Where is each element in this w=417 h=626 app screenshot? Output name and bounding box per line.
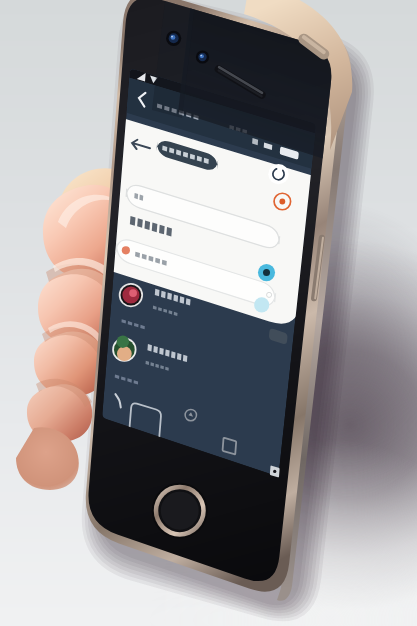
button[interactable]: Back	[140, 140, 170, 170]
